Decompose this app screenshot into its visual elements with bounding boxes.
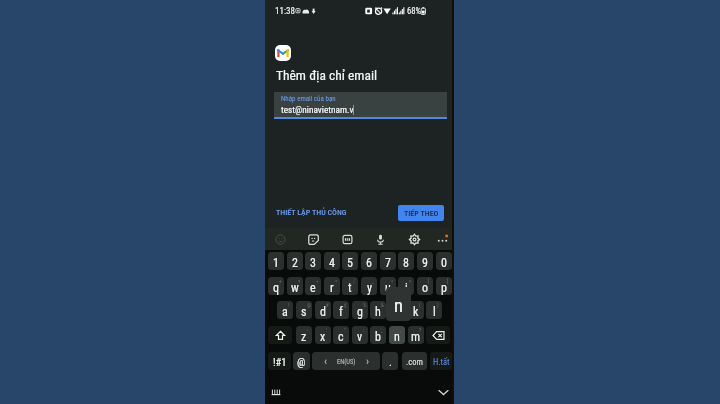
- staticText: j: [396, 305, 399, 319]
- staticText: 4: [329, 256, 335, 270]
- staticText: q: [273, 281, 280, 295]
- staticText: ;: [381, 327, 383, 333]
- staticText: k: [413, 305, 419, 319]
- button[interactable]: ): [426, 301, 442, 319]
- button[interactable]: ": [333, 326, 349, 344]
- button[interactable]: Emoji: [273, 232, 288, 247]
- button[interactable]: !#1: [268, 352, 291, 370]
- button[interactable]: Space: [312, 352, 380, 370]
- button[interactable]: Change keyboard: [270, 386, 282, 398]
- staticText: H.tất: [433, 357, 450, 367]
- button[interactable]: More options: [435, 232, 450, 247]
- button[interactable]: 5: [342, 252, 358, 270]
- staticText: *: [400, 302, 403, 308]
- staticText: test@ninavietnam.v: [281, 104, 354, 115]
- button[interactable]: *: [389, 301, 405, 319]
- button[interactable]: 6: [361, 252, 377, 270]
- button[interactable]: &: [370, 301, 386, 319]
- button[interactable]: Shift: [268, 326, 292, 344]
- button[interactable]: ×: [287, 277, 303, 295]
- button[interactable]: Voice input: [373, 232, 388, 247]
- button[interactable]: 2: [287, 252, 303, 270]
- button[interactable]: =: [324, 277, 340, 295]
- button[interactable]: TIẾP THEO: [398, 205, 444, 221]
- staticText: w: [291, 281, 299, 295]
- button[interactable]: @: [293, 352, 310, 370]
- button[interactable]: 4: [324, 252, 340, 270]
- button[interactable]: _: [361, 277, 377, 295]
- staticText: p: [441, 281, 447, 295]
- staticText: !#1: [273, 356, 287, 368]
- button[interactable]: ?: [408, 326, 424, 344]
- button[interactable]: Backspace: [426, 326, 450, 344]
- button[interactable]: 8: [398, 252, 414, 270]
- staticText: 5: [347, 256, 353, 270]
- button[interactable]: Nhập email của bạn: [274, 92, 447, 119]
- staticText: @: [307, 302, 311, 308]
- staticText: ]: [447, 278, 449, 284]
- button[interactable]: .: [382, 352, 398, 370]
- staticText: b: [375, 330, 381, 344]
- button[interactable]: ;: [370, 326, 386, 344]
- button[interactable]: :: [352, 326, 368, 344]
- button[interactable]: GIF: [340, 232, 355, 247]
- staticText: 11:38: [275, 6, 295, 17]
- button[interactable]: -: [296, 326, 312, 344]
- staticText: ‹: [324, 355, 327, 368]
- button[interactable]: 3: [305, 252, 321, 270]
- button[interactable]: ]: [436, 277, 452, 295]
- button[interactable]: (: [408, 301, 424, 319]
- button[interactable]: H.tất: [430, 352, 453, 370]
- staticText: z: [301, 330, 307, 344]
- staticText: f: [339, 305, 343, 319]
- staticText: ': [326, 327, 327, 333]
- staticText: i: [405, 281, 408, 295]
- staticText: 7: [385, 256, 391, 270]
- staticText: ×: [298, 278, 301, 284]
- button[interactable]: 9: [417, 252, 433, 270]
- button[interactable]: ': [315, 326, 331, 344]
- button[interactable]: .com: [402, 352, 427, 370]
- staticText: (: [419, 302, 421, 308]
- staticText: ,: [400, 327, 401, 333]
- staticText: ›: [366, 355, 369, 368]
- staticText: o: [422, 281, 429, 295]
- button[interactable]: 1: [268, 252, 284, 270]
- button[interactable]: Hide keyboard: [437, 386, 449, 398]
- staticText: ?: [419, 327, 422, 333]
- button[interactable]: %: [352, 301, 368, 319]
- staticText: d: [320, 305, 326, 319]
- button[interactable]: Settings: [407, 232, 422, 247]
- button[interactable]: <: [380, 277, 396, 295]
- button[interactable]: +: [268, 277, 284, 295]
- staticText: &: [381, 302, 384, 308]
- staticText: u: [385, 281, 391, 295]
- button[interactable]: >: [398, 277, 414, 295]
- button[interactable]: ,: [389, 326, 405, 344]
- button[interactable]: 7: [380, 252, 396, 270]
- staticText: !: [288, 302, 290, 308]
- button[interactable]: #: [315, 301, 331, 319]
- staticText: 2: [292, 256, 298, 270]
- button[interactable]: /: [342, 277, 358, 295]
- button[interactable]: !: [277, 301, 293, 319]
- button[interactable]: Stickers: [306, 232, 321, 247]
- staticText: c: [338, 330, 344, 344]
- staticText: n: [394, 295, 403, 317]
- staticText: [: [428, 278, 430, 284]
- staticText: t: [348, 281, 352, 295]
- staticText: 9: [422, 256, 428, 270]
- staticText: /: [353, 278, 355, 284]
- staticText: =: [335, 278, 338, 284]
- staticText: a: [282, 305, 288, 319]
- staticText: -: [307, 327, 309, 333]
- button[interactable]: @: [296, 301, 312, 319]
- button[interactable]: [: [417, 277, 433, 295]
- staticText: $: [344, 302, 347, 308]
- button[interactable]: THIẾT LẬP THỦ CÔNG: [274, 208, 345, 217]
- button[interactable]: 0: [436, 252, 452, 270]
- staticText: 1: [273, 256, 279, 270]
- button[interactable]: $: [333, 301, 349, 319]
- button[interactable]: ÷: [305, 277, 321, 295]
- staticText: m: [411, 330, 421, 344]
